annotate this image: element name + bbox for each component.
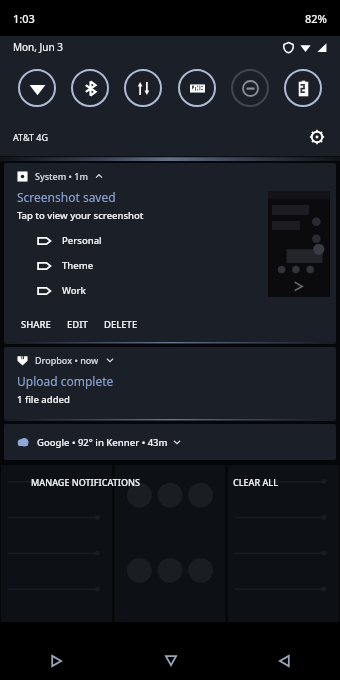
staticText: Work xyxy=(62,284,86,297)
staticText: DELETE xyxy=(104,318,138,331)
button[interactable]: SHARE xyxy=(13,312,59,337)
button[interactable]: Collapse xyxy=(93,170,105,182)
staticText: EDIT xyxy=(67,318,88,331)
button[interactable]: System • 1m xyxy=(4,163,336,344)
button[interactable]: Personal xyxy=(37,234,102,247)
staticText: 1 file added xyxy=(17,393,70,406)
staticText: MANAGE NOTIFICATIONS xyxy=(31,476,140,488)
button[interactable]: EDIT xyxy=(59,312,96,337)
button[interactable]: Do not disturb xyxy=(228,66,272,110)
staticText: 1:03 xyxy=(13,11,35,26)
button[interactable]: Work xyxy=(37,284,86,297)
button[interactable]: Back xyxy=(0,642,114,680)
button[interactable]: LTE xyxy=(175,66,219,110)
staticText: Upload complete xyxy=(17,373,114,389)
staticText: Google • 92° in Kenner • 43m xyxy=(37,436,168,449)
button[interactable]: Settings xyxy=(307,127,327,147)
button[interactable]: Battery saver xyxy=(281,66,325,110)
button[interactable]: Home xyxy=(114,642,227,680)
button[interactable]: Mobile data xyxy=(121,66,165,110)
button[interactable]: Google • 92° in Kenner • 43m xyxy=(4,424,336,460)
staticText: Personal xyxy=(62,234,102,247)
staticText: System • 1m xyxy=(35,170,88,182)
button[interactable]: Recents xyxy=(227,642,340,680)
staticText: Tap to view your screenshot xyxy=(17,209,144,222)
button[interactable]: DELETE xyxy=(96,312,146,337)
button[interactable]: Theme xyxy=(37,259,94,272)
staticText: Screenshot saved xyxy=(17,189,116,205)
staticText: Theme xyxy=(62,259,94,272)
button[interactable]: CLEAR ALL xyxy=(170,471,340,493)
button[interactable]: Dropbox • now xyxy=(4,347,336,421)
button[interactable]: MANAGE NOTIFICATIONS xyxy=(0,471,170,493)
staticText: Dropbox • now xyxy=(35,354,99,366)
staticText: Mon, Jun 3 xyxy=(13,40,63,54)
staticText: SHARE xyxy=(21,318,51,331)
button[interactable]: Wi-Fi xyxy=(15,66,59,110)
button[interactable]: Bluetooth xyxy=(68,66,112,110)
button[interactable]: Expand xyxy=(104,354,116,366)
staticText: AT&T 4G xyxy=(13,131,49,143)
staticText: 82% xyxy=(305,11,327,26)
staticText: CLEAR ALL xyxy=(233,476,278,488)
